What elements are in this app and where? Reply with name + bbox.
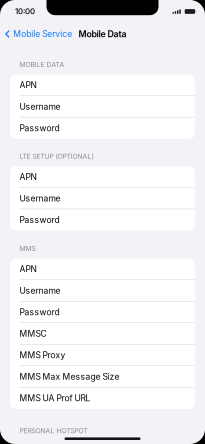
button[interactable]: Username: [10, 280, 195, 301]
staticText: APN: [19, 264, 36, 274]
button[interactable]: Password: [10, 301, 195, 323]
staticText: MMS Max Message Size: [19, 372, 119, 382]
staticText: MMS UA Prof URL: [19, 393, 90, 403]
staticText: Password: [19, 307, 59, 317]
button[interactable]: APN: [10, 166, 195, 188]
staticText: APN: [19, 172, 36, 182]
staticText: Password: [19, 215, 59, 225]
staticText: Mobile Service: [13, 29, 72, 39]
staticText: LTE SETUP (OPTIONAL): [19, 152, 93, 160]
staticText: Username: [19, 101, 60, 112]
button[interactable]: MMSC: [10, 323, 195, 344]
button[interactable]: APN: [10, 74, 195, 96]
button[interactable]: Username: [10, 96, 195, 117]
staticText: MMS Proxy: [19, 350, 65, 360]
staticText: 10:00: [15, 7, 35, 16]
staticText: MMS: [19, 244, 35, 253]
staticText: MOBILE DATA: [19, 60, 64, 69]
staticText: Mobile Data: [78, 29, 126, 39]
button[interactable]: Password: [10, 117, 195, 139]
staticText: Username: [19, 193, 60, 204]
staticText: Password: [19, 123, 59, 133]
staticText: Username: [19, 286, 60, 296]
button[interactable]: MMS Max Message Size: [10, 366, 195, 387]
staticText: PERSONAL HOTSPOT: [19, 427, 87, 435]
button[interactable]: APN: [10, 258, 195, 280]
button[interactable]: MMS Proxy: [10, 344, 195, 366]
button[interactable]: Mobile Service: [0, 24, 77, 44]
button[interactable]: Username: [10, 188, 195, 209]
staticText: MMSC: [19, 329, 46, 339]
button[interactable]: MMS UA Prof URL: [10, 387, 195, 409]
button[interactable]: Password: [10, 209, 195, 231]
staticText: APN: [19, 80, 36, 90]
